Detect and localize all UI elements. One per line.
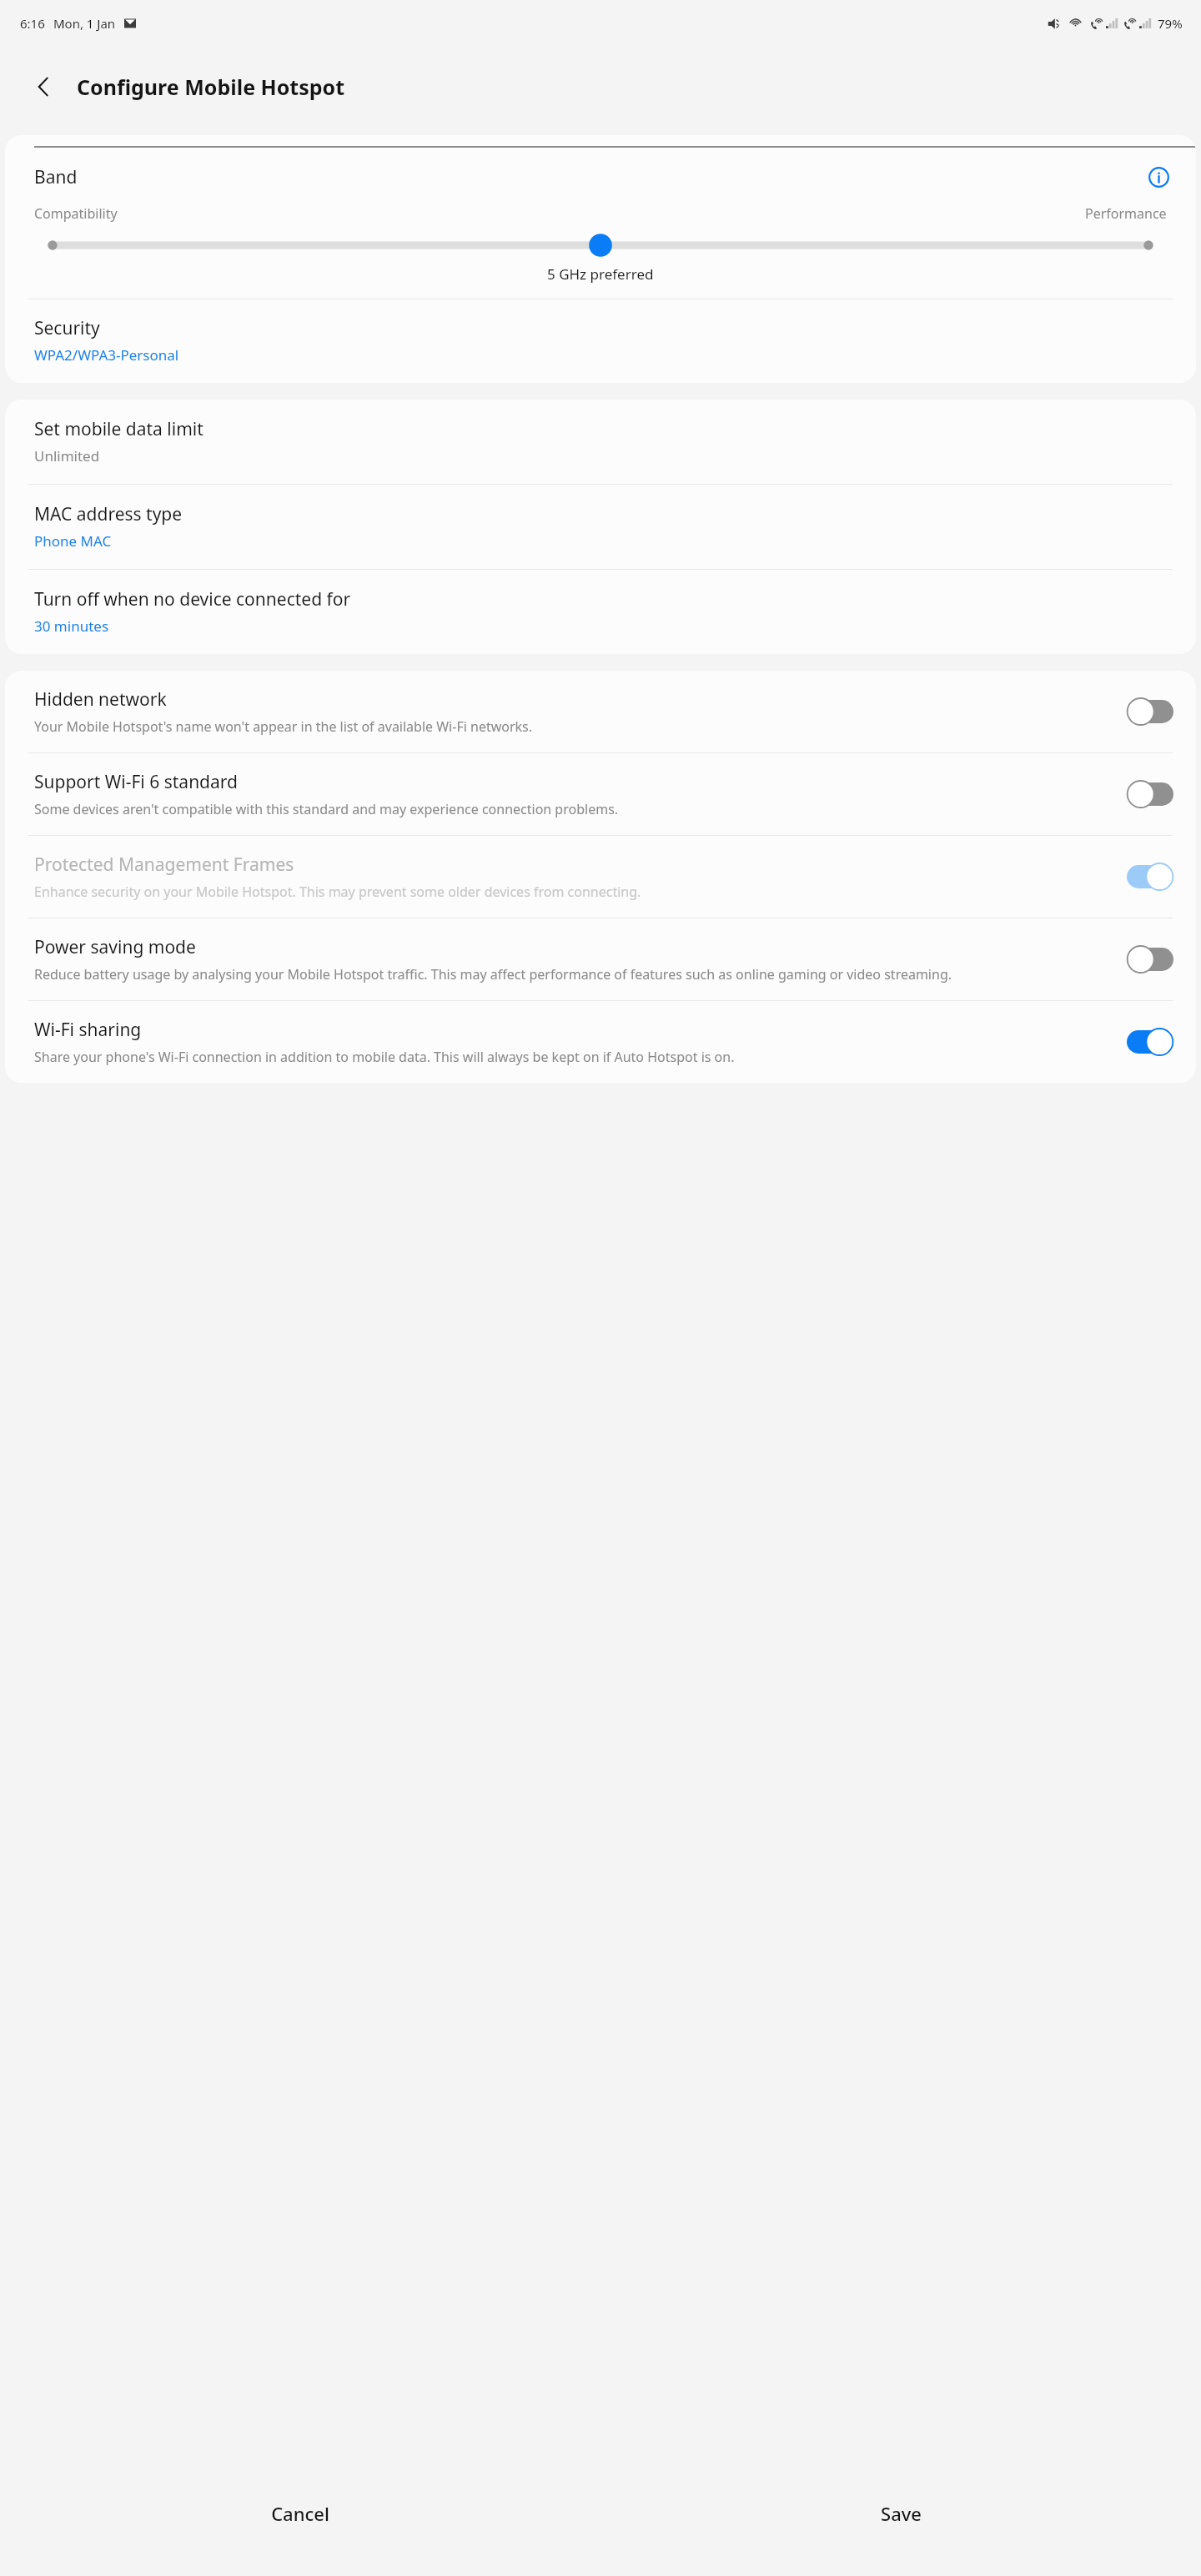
button[interactable]: Toggle off [1124,777,1176,811]
staticText: Compatibility [34,204,118,223]
button[interactable]: Toggle on [1124,1025,1176,1059]
staticText: Save [881,2501,922,2526]
staticText: Reduce battery usage by analysing your M… [34,965,952,984]
staticText: Protected Management Frames [34,853,294,877]
button[interactable]: Turn off when no device connected for [5,570,1196,654]
staticText: 79% [1158,15,1183,32]
staticText: Set mobile data limit [34,417,204,441]
staticText: Phone MAC [34,531,112,551]
staticText: Share your phone's Wi-Fi connection in a… [34,1048,735,1066]
staticText: Turn off when no device connected for [34,587,351,611]
button[interactable]: Support Wi-Fi 6 standard [5,753,1196,835]
staticText: MAC address type [34,502,183,526]
staticText: 5 GHz preferred [547,264,654,284]
staticText: Enhance security on your Mobile Hotspot.… [34,883,641,901]
button[interactable]: Information about band [1144,163,1173,191]
button[interactable]: Set mobile data limit [5,400,1196,484]
button[interactable]: Security [5,299,1196,383]
staticText: Power saving mode [34,935,196,959]
staticText: Security [34,316,100,340]
staticText: Cancel [271,2501,329,2526]
button[interactable]: MAC address type [5,485,1196,569]
button[interactable]: Band [5,148,1196,299]
staticText: Wi-Fi sharing [34,1018,142,1042]
button[interactable]: Toggle off [1124,695,1176,728]
button[interactable]: Hidden network [5,671,1196,752]
staticText: Band [34,165,78,189]
staticText: Hidden network [34,687,167,712]
staticText: 6:16 [20,15,45,32]
staticText: Configure Mobile Hotspot [77,73,344,101]
staticText: 30 minutes [34,616,109,636]
staticText: Your Mobile Hotspot's name won't appear … [34,717,533,736]
button[interactable]: Toggle on [1124,860,1176,893]
staticText: Performance [1085,204,1167,223]
staticText: Some devices aren't compatible with this… [34,800,619,818]
button[interactable]: Wi-Fi sharing [5,1001,1196,1083]
button[interactable]: Protected Management Frames [5,836,1196,918]
button[interactable]: Back [22,65,65,108]
button[interactable]: Power saving mode [5,918,1196,1000]
staticText: WPA2/WPA3-Personal [34,345,179,365]
button[interactable]: Save [600,2451,1201,2576]
button[interactable]: Cancel [0,2451,600,2576]
staticText: Mon, 1 Jan [53,15,116,32]
button[interactable]: Toggle off [1124,943,1176,976]
staticText: Support Wi-Fi 6 standard [34,770,238,794]
staticText: Unlimited [34,446,100,465]
